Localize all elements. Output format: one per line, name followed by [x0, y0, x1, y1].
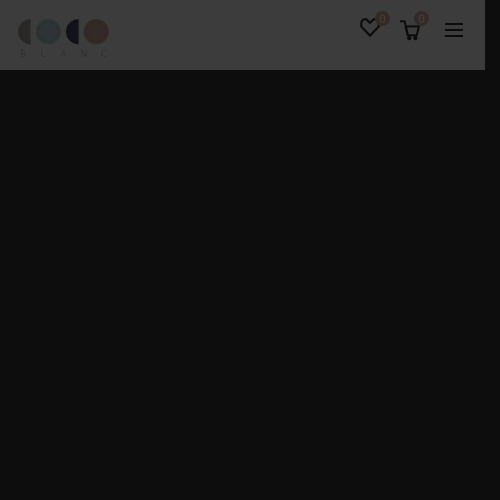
staticText: 0	[379, 11, 385, 26]
button[interactable]: Menu	[434, 12, 474, 48]
staticText: N	[81, 47, 88, 59]
staticText: L	[40, 47, 45, 59]
staticText: A	[60, 47, 66, 59]
staticText: C	[101, 47, 107, 59]
button[interactable]: Cart	[400, 13, 432, 53]
button[interactable]: BLANC home	[18, 19, 148, 59]
staticText: 0	[418, 11, 424, 26]
staticText: B	[20, 47, 26, 59]
button[interactable]: Wishlist	[360, 13, 392, 53]
